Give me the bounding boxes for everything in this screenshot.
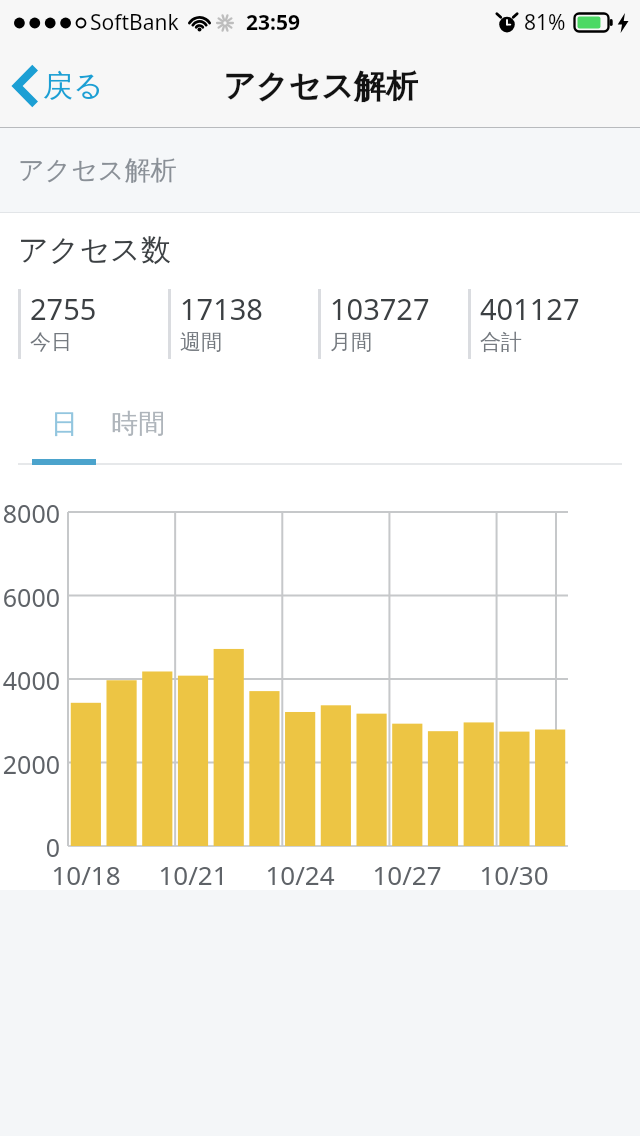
button[interactable]: 時間 <box>96 405 180 465</box>
staticText: 8000 <box>0 496 60 530</box>
button[interactable]: 日 <box>32 405 96 465</box>
staticText: 月間 <box>330 329 372 355</box>
staticText: 10/30 <box>466 857 562 892</box>
staticText: 401127 <box>480 289 580 328</box>
staticText: 4000 <box>0 663 60 697</box>
staticText: 日 <box>51 407 78 441</box>
staticText: 103727 <box>330 289 430 328</box>
staticText: 10/24 <box>252 857 348 892</box>
staticText: 6000 <box>0 580 60 614</box>
staticText: 2000 <box>0 747 60 781</box>
staticText: 戻る <box>43 67 104 105</box>
staticText: 10/21 <box>145 857 241 892</box>
staticText: 23:59 <box>246 8 300 37</box>
staticText: 時間 <box>111 407 165 441</box>
staticText: 0 <box>0 830 60 864</box>
staticText: アクセス解析 <box>223 66 418 106</box>
staticText: 2755 <box>30 289 97 328</box>
staticText: SoftBank <box>90 8 179 37</box>
staticText: 81% <box>524 8 566 37</box>
staticText: 週間 <box>180 329 222 355</box>
other: Back <box>13 63 40 109</box>
staticText: 10/27 <box>359 857 455 892</box>
staticText: 合計 <box>480 329 522 355</box>
staticText: 今日 <box>30 329 72 355</box>
staticText: アクセス解析 <box>18 154 177 187</box>
staticText: アクセス数 <box>18 231 171 269</box>
button[interactable]: Back <box>8 57 109 115</box>
staticText: 17138 <box>180 289 263 328</box>
staticText: 10/18 <box>38 857 134 892</box>
